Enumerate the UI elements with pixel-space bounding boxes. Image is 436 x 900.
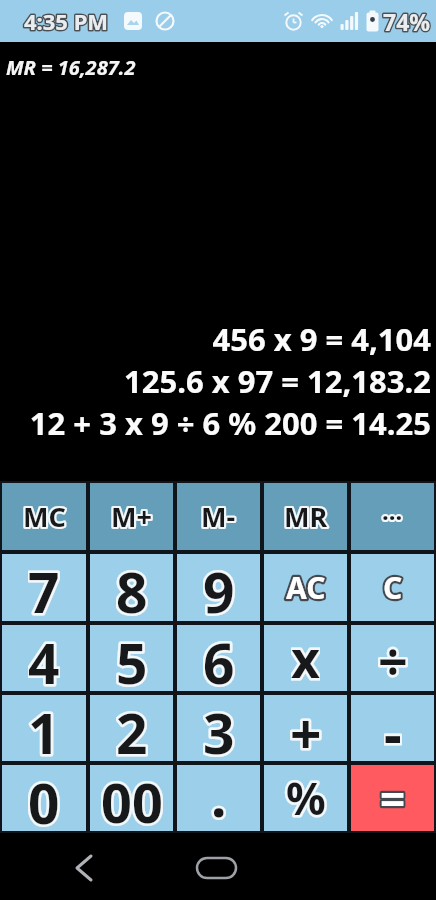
staticText: = — [380, 768, 406, 828]
staticText: AC — [286, 567, 326, 608]
button[interactable]: MC — [2, 483, 86, 550]
staticText: 00 — [101, 765, 163, 831]
button[interactable]: = — [351, 765, 434, 831]
staticText: C — [383, 567, 403, 608]
staticText: 1 — [28, 695, 60, 761]
button[interactable]: AC — [264, 554, 347, 621]
button[interactable]: - — [351, 695, 434, 761]
button[interactable]: + — [264, 695, 347, 761]
button[interactable]: . — [177, 765, 260, 831]
staticText: 456 x 9 = 4,104 — [212, 318, 431, 360]
staticText: - — [384, 695, 402, 761]
staticText: 9 — [203, 554, 235, 621]
staticText: 9 — [203, 554, 235, 621]
staticText: x — [291, 625, 320, 691]
staticText: 6 — [203, 625, 235, 691]
staticText: 8 — [116, 554, 148, 621]
staticText: % — [286, 768, 326, 828]
staticText: C — [383, 567, 403, 608]
staticText: AC — [286, 567, 326, 608]
button[interactable]: 7 — [2, 554, 86, 621]
button[interactable]: ... — [351, 483, 434, 550]
staticText: ... — [382, 494, 403, 527]
staticText: % — [286, 768, 326, 828]
staticText: 4 — [28, 625, 60, 691]
staticText: x — [291, 625, 320, 691]
staticText: 4:35 PM — [24, 6, 109, 36]
staticText: 2 — [116, 695, 148, 761]
staticText: 00 — [101, 765, 163, 831]
staticText: ÷ — [378, 625, 408, 691]
staticText: - — [384, 695, 402, 761]
button[interactable]: 6 — [177, 625, 260, 691]
staticText: . — [211, 758, 227, 824]
button[interactable]: 9 — [177, 554, 260, 621]
staticText: MR = 16,287.2 — [6, 54, 136, 81]
staticText: 125.6 x 97 = 12,183.2 — [124, 360, 431, 402]
button[interactable]: MR — [264, 483, 347, 550]
staticText: 8 — [116, 554, 148, 621]
staticText: 3 — [203, 695, 235, 761]
staticText: M- — [201, 498, 236, 535]
button[interactable]: 0 — [2, 765, 86, 831]
staticText: 7 — [28, 554, 60, 621]
button[interactable]: 2 — [90, 695, 173, 761]
button[interactable]: x — [264, 625, 347, 691]
staticText: MR — [284, 498, 328, 535]
button[interactable]: ÷ — [351, 625, 434, 691]
staticText: 4 — [28, 625, 60, 691]
staticText: M+ — [111, 498, 152, 535]
staticText: 4:35 PM — [24, 6, 109, 36]
staticText: = — [380, 768, 406, 828]
staticText: ... — [382, 494, 403, 527]
staticText: M- — [201, 498, 236, 535]
button[interactable]: 00 — [90, 765, 173, 831]
staticText: MC — [23, 498, 66, 535]
staticText: + — [290, 695, 322, 761]
button[interactable]: % — [264, 765, 347, 831]
staticText: 12 + 3 x 9 ÷ 6 % 200 = 14.25 — [29, 402, 431, 444]
staticText: 74% — [383, 6, 431, 37]
button[interactable]: 3 — [177, 695, 260, 761]
staticText: 6 — [203, 625, 235, 691]
staticText: 74% — [383, 6, 431, 37]
staticText: 0 — [28, 765, 60, 831]
button[interactable] — [187, 837, 247, 897]
staticText: 7 — [28, 554, 60, 621]
staticText: MR — [284, 498, 328, 535]
staticText: 5 — [116, 625, 148, 691]
staticText: 5 — [116, 625, 148, 691]
staticText: + — [290, 695, 322, 761]
staticText: ÷ — [378, 625, 408, 691]
button[interactable]: C — [351, 554, 434, 621]
staticText: 2 — [116, 695, 148, 761]
staticText: . — [211, 758, 227, 824]
staticText: 1 — [28, 695, 60, 761]
button[interactable]: M+ — [90, 483, 173, 550]
button[interactable]: 8 — [90, 554, 173, 621]
button[interactable] — [54, 837, 114, 897]
button[interactable]: M- — [177, 483, 260, 550]
button[interactable]: 1 — [2, 695, 86, 761]
staticText: 3 — [203, 695, 235, 761]
staticText: 0 — [28, 765, 60, 831]
staticText: MC — [23, 498, 66, 535]
button[interactable]: 5 — [90, 625, 173, 691]
button[interactable]: 4 — [2, 625, 86, 691]
staticText: M+ — [111, 498, 152, 535]
